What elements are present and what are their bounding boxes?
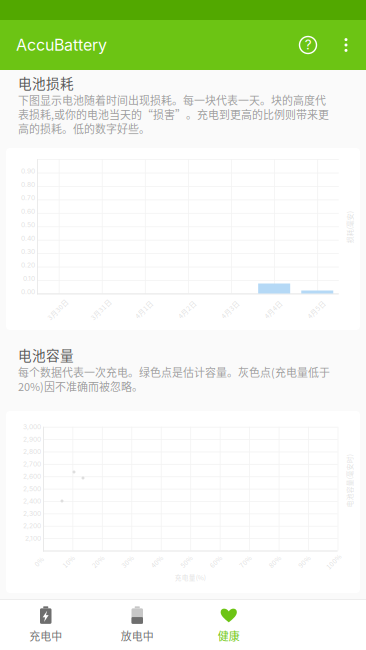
staticText: 2,200 bbox=[23, 522, 41, 530]
staticText: 放电中 bbox=[121, 628, 154, 644]
staticText: 损耗(毫安) bbox=[334, 222, 366, 232]
staticText: 每个数据代表一次充电。绿色点是估计容量。灰色点(充电量低于20%)因不准确而被忽… bbox=[18, 364, 330, 394]
staticText: 0.10 bbox=[23, 274, 35, 283]
staticText: 充电量(%) bbox=[175, 573, 206, 582]
staticText: 2,300 bbox=[23, 509, 41, 518]
staticText: 健康 bbox=[218, 628, 240, 644]
button[interactable]: 健康 bbox=[183, 600, 274, 650]
staticText: 0.20 bbox=[21, 261, 35, 269]
staticText: 50% bbox=[179, 557, 193, 566]
staticText: 0.90 bbox=[21, 167, 35, 175]
staticText: 下图显示电池随着时间出现损耗。每一块代表一天。块的高度代表损耗,或你的电池当天的… bbox=[18, 92, 329, 136]
staticText: 4月1日 bbox=[133, 305, 155, 314]
staticText: 30% bbox=[120, 557, 134, 566]
staticText: 2,100 bbox=[25, 534, 41, 542]
button[interactable]: More options bbox=[329, 20, 363, 70]
staticText: 4月3日 bbox=[219, 305, 241, 314]
staticText: 3月30日 bbox=[45, 305, 71, 314]
staticText: 0.70 bbox=[21, 194, 35, 202]
staticText: 电池损耗 bbox=[18, 73, 74, 93]
staticText: 80% bbox=[268, 557, 282, 566]
staticText: 电池容量(毫安时) bbox=[323, 476, 366, 486]
staticText: 3,000 bbox=[23, 423, 41, 431]
staticText: 0.00 bbox=[21, 288, 35, 296]
staticText: 2,800 bbox=[23, 448, 41, 456]
button[interactable]: Help bbox=[287, 20, 329, 70]
staticText: 0% bbox=[34, 557, 44, 566]
staticText: 10% bbox=[61, 557, 75, 566]
button[interactable]: 充电中 bbox=[0, 600, 91, 650]
staticText: 0.60 bbox=[21, 207, 35, 215]
staticText: 90% bbox=[297, 557, 311, 566]
staticText: AccuBattery bbox=[16, 35, 107, 55]
staticText: 2,900 bbox=[23, 435, 41, 443]
staticText: 2,600 bbox=[23, 472, 41, 480]
staticText: 2,500 bbox=[23, 485, 41, 493]
staticText: ? bbox=[305, 37, 312, 53]
staticText: 0.80 bbox=[21, 180, 35, 189]
staticText: 电池容量 bbox=[18, 345, 74, 365]
staticText: 60% bbox=[209, 557, 223, 566]
staticText: 4月4日 bbox=[262, 305, 284, 314]
staticText: 2,400 bbox=[23, 497, 41, 505]
button[interactable]: 放电中 bbox=[91, 600, 183, 650]
staticText: 2,700 bbox=[23, 460, 41, 468]
staticText: 充电中 bbox=[29, 628, 62, 644]
staticText: 40% bbox=[150, 557, 164, 566]
staticText: 4月2日 bbox=[176, 305, 198, 314]
staticText: 100% bbox=[325, 557, 343, 566]
staticText: 3月31日 bbox=[88, 305, 114, 314]
staticText: 0.40 bbox=[21, 234, 35, 242]
staticText: 0.50 bbox=[21, 221, 35, 229]
staticText: 4月5日 bbox=[305, 305, 327, 314]
staticText: 20% bbox=[91, 557, 105, 566]
staticText: 70% bbox=[238, 557, 252, 566]
staticText: 0.30 bbox=[21, 248, 35, 256]
